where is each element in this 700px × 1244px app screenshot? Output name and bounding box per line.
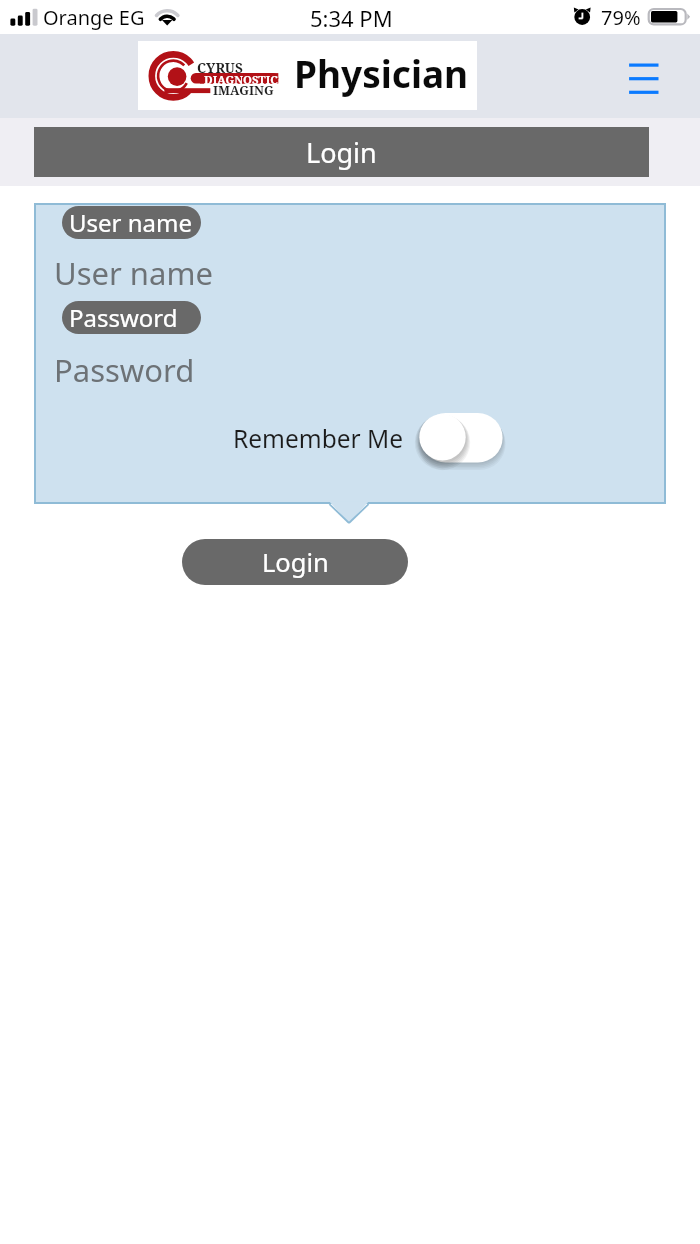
staticText: IMAGING	[213, 82, 274, 99]
staticText: Physician	[294, 48, 469, 98]
staticText: DIAGNOSTIC	[204, 72, 278, 87]
button[interactable]: Remember Me	[229, 409, 508, 467]
staticText: Remember Me	[233, 422, 404, 455]
button[interactable]: Password field	[48, 344, 652, 394]
button[interactable]: User name field	[48, 247, 652, 297]
staticText: User name	[69, 206, 192, 239]
staticText: Login	[306, 134, 377, 171]
button[interactable]: Login	[34, 127, 649, 177]
button[interactable]: Remember Me toggle	[418, 409, 508, 467]
staticText: Orange EG	[43, 4, 145, 31]
staticText: User name	[54, 252, 213, 294]
button[interactable]: Menu	[619, 53, 669, 99]
button[interactable]: Login	[182, 539, 408, 585]
staticText: CYRUS	[197, 59, 243, 77]
staticText: Password	[54, 349, 195, 391]
staticText: 5:34 PM	[310, 3, 393, 33]
staticText: 79%	[601, 4, 641, 31]
staticText: Password	[69, 301, 178, 334]
staticText: Login	[262, 545, 329, 580]
